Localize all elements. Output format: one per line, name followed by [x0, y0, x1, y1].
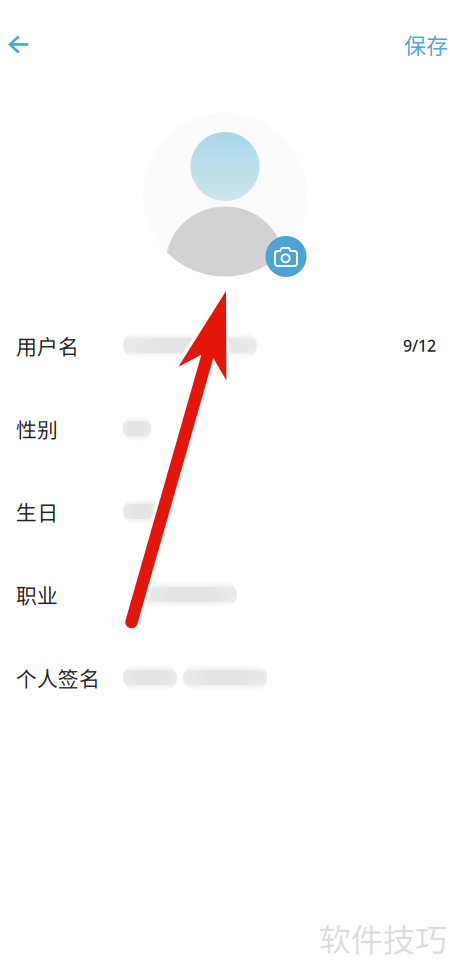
button[interactable]: 个人签名: [0, 636, 450, 719]
staticText: 保存: [404, 29, 448, 60]
staticText: 软件技巧: [319, 915, 447, 961]
staticText: 个人签名: [16, 662, 100, 692]
staticText: 性别: [16, 413, 58, 443]
staticText: 生日: [16, 496, 58, 526]
button[interactable]: 性别: [0, 387, 450, 470]
staticText: 用户名: [16, 330, 79, 360]
staticText: 职业: [16, 579, 58, 609]
button[interactable]: 保存: [404, 13, 450, 72]
button[interactable]: 职业: [0, 553, 450, 636]
button[interactable]: Back: [0, 20, 44, 65]
staticText: 9/12: [403, 335, 436, 356]
button[interactable]: Change photo: [265, 236, 306, 277]
button[interactable]: 生日: [0, 470, 450, 553]
button[interactable]: 用户名: [0, 304, 450, 387]
